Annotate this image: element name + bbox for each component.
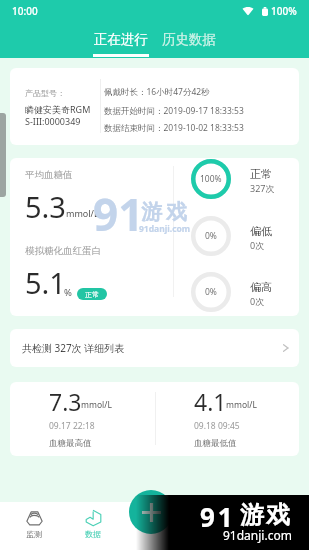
staticText: 数据结束时间：2019-10-02 18:33:53 <box>104 122 244 134</box>
staticText: 偏高 <box>250 280 272 294</box>
staticText: 91 <box>93 184 144 244</box>
staticText: mmol/L <box>81 399 112 411</box>
staticText: 游戏 <box>239 500 291 530</box>
staticText: S-III:0000349 <box>25 115 81 127</box>
staticText: 327次 <box>250 182 275 194</box>
button[interactable]: 数据 <box>67 502 119 550</box>
staticText: 产品型号： <box>25 88 65 98</box>
staticText: 0次 <box>250 239 265 251</box>
staticText: 09.18 09:45 <box>194 420 240 432</box>
staticText: 5.1 <box>25 263 66 302</box>
staticText: 血糖最低值 <box>194 438 237 449</box>
staticText: 共检测 327次 详细列表 <box>22 341 125 355</box>
staticText: 游戏 <box>139 199 189 225</box>
staticText: 5.3 <box>25 187 66 226</box>
staticText: 偏低 <box>250 224 272 238</box>
staticText: 佩戴时长：16小时47分42秒 <box>104 86 210 98</box>
staticText: 血糖最高值 <box>49 438 92 449</box>
staticText: % <box>64 286 72 299</box>
staticText: 平均血糖值 <box>25 169 73 181</box>
staticText: 09.17 22:18 <box>49 420 95 432</box>
staticText: 0% <box>205 230 217 242</box>
staticText: 7.3 <box>49 386 82 417</box>
staticText: 正常 <box>250 167 272 181</box>
staticText: 历史数据 <box>162 31 216 48</box>
button[interactable]: 共检测 327次 详细列表 <box>10 329 299 367</box>
staticText: 数据 <box>85 529 101 539</box>
staticText: 模拟糖化血红蛋白 <box>25 245 101 257</box>
staticText: 10:00 <box>12 4 38 18</box>
staticText: 0% <box>205 286 217 298</box>
staticText: 正常 <box>85 290 99 299</box>
staticText: 100% <box>200 173 222 185</box>
staticText: 监测 <box>26 529 42 539</box>
staticText: 91 <box>200 499 236 534</box>
button[interactable]: 监测 <box>8 502 60 550</box>
staticText: 100% <box>271 4 297 18</box>
staticText: mmol/L <box>66 207 99 219</box>
button[interactable]: 历史数据 <box>155 28 223 58</box>
staticText: 4.1 <box>194 386 227 417</box>
staticText: mmol/L <box>226 399 257 411</box>
staticText: 91danji.com <box>223 527 292 543</box>
staticText: 正在进行 <box>94 31 148 48</box>
staticText: 91danji.com <box>139 223 191 235</box>
staticText: 数据开始时间：2019-09-17 18:33:53 <box>104 105 244 117</box>
button[interactable]: 正在进行 <box>87 28 155 58</box>
button[interactable]: Add <box>129 490 173 534</box>
staticText: 0次 <box>250 295 265 307</box>
staticText: 瞵健安美奇RGM <box>25 103 91 115</box>
